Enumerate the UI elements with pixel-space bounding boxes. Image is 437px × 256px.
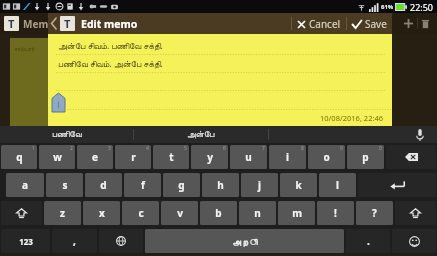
button[interactable]: c [122, 201, 159, 225]
staticText: k [295, 178, 302, 192]
staticText: t [169, 150, 174, 164]
staticText: 1 [32, 145, 35, 152]
button[interactable]: b [200, 201, 237, 225]
button[interactable]: , [52, 229, 97, 253]
staticText: T [8, 16, 15, 31]
staticText: 2 [70, 145, 73, 152]
button[interactable]: t [153, 145, 189, 169]
staticText: 123 [19, 236, 33, 247]
staticText: அன்பே [187, 130, 215, 139]
button[interactable]: பணிவே [0, 126, 133, 143]
button[interactable]: enter [358, 173, 436, 197]
staticText: பணிவே சிவம். அன்பே சக்தி. [58, 58, 163, 70]
staticText: 0 [379, 145, 382, 152]
button[interactable]: ? [356, 201, 393, 225]
button[interactable]: w [39, 145, 75, 169]
staticText: r [131, 150, 136, 164]
staticText: . [367, 234, 370, 248]
button[interactable]: m [278, 201, 315, 225]
button[interactable]: s [46, 173, 83, 197]
button[interactable]: g [163, 173, 200, 197]
staticText: v [177, 206, 183, 220]
staticText: 3 [108, 145, 111, 152]
button[interactable]: 123 [1, 229, 50, 253]
button[interactable]: shift [395, 201, 436, 225]
staticText: Cancel [309, 17, 341, 31]
button[interactable]: emoji [392, 229, 436, 253]
button[interactable]: Save [347, 17, 392, 31]
button[interactable]: p [347, 145, 384, 169]
staticText: அ ற ி [232, 236, 258, 247]
staticText: பணிவே [52, 130, 82, 139]
staticText: l [336, 178, 339, 192]
staticText: , [73, 234, 76, 248]
button[interactable]: ! [317, 201, 354, 225]
button[interactable]: d [85, 173, 122, 197]
staticText: f [141, 178, 145, 192]
button[interactable]: r [115, 145, 151, 169]
staticText: m [292, 206, 302, 220]
button[interactable]: v [161, 201, 198, 225]
staticText: j [258, 178, 261, 192]
staticText: 4 [146, 145, 149, 152]
staticText: சாம்பார் [14, 46, 35, 52]
button[interactable]: அ ற ி [145, 229, 344, 253]
staticText: z [60, 206, 65, 220]
staticText: i [286, 150, 289, 164]
button[interactable]: Add [400, 15, 417, 32]
staticText: Edit memo [81, 17, 138, 31]
button[interactable]: அன்பே [134, 126, 268, 143]
staticText: 9 [340, 145, 343, 152]
staticText: y [207, 150, 213, 164]
staticText: g [178, 178, 185, 192]
staticText: அன்பே சிவம். பணிவே சக்தி. [58, 40, 163, 52]
button[interactable]: l [319, 173, 356, 197]
staticText: h [217, 178, 224, 192]
button[interactable]: Cancel [292, 17, 346, 31]
button[interactable]: globe [99, 229, 143, 253]
button[interactable]: f [124, 173, 161, 197]
staticText: Memo [23, 17, 55, 31]
staticText: 8 [301, 145, 304, 152]
staticText: 5 [184, 145, 187, 152]
button[interactable]: o [308, 145, 345, 169]
button[interactable]: அன்பே சிவம். பணிவே சக்தி. [48, 34, 392, 126]
staticText: 61% [381, 3, 394, 11]
staticText: T [64, 16, 71, 31]
button[interactable]: i [269, 145, 306, 169]
staticText: x [99, 206, 105, 220]
button[interactable]: z [44, 201, 81, 225]
button[interactable]: e [77, 145, 113, 169]
button[interactable]: a [6, 173, 44, 197]
staticText: q [16, 150, 23, 164]
button[interactable]: shift [1, 201, 42, 225]
button[interactable]: y [191, 145, 228, 169]
button[interactable]: Up [48, 18, 60, 29]
button[interactable]: n [239, 201, 276, 225]
staticText: c [138, 206, 144, 220]
button[interactable]: . [346, 229, 390, 253]
button[interactable]: u [230, 145, 267, 169]
staticText: ? [372, 206, 377, 220]
staticText: 10/08/2016, 22:46 [320, 113, 384, 123]
button[interactable]: bksp [386, 145, 436, 169]
staticText: 6 [223, 145, 226, 152]
staticText: o [323, 150, 330, 164]
staticText: Save [365, 17, 387, 31]
staticText: a [22, 178, 28, 192]
staticText: p [362, 150, 369, 164]
staticText: 22:50 [410, 1, 434, 13]
staticText: w [53, 150, 62, 164]
button[interactable]: Delete [418, 15, 433, 32]
button[interactable]: Voice input [403, 126, 437, 143]
button[interactable]: k [280, 173, 317, 197]
button[interactable]: x [83, 201, 120, 225]
staticText: u [245, 150, 252, 164]
staticText: ! [334, 206, 337, 220]
staticText: b [215, 206, 222, 220]
button[interactable]: j [241, 173, 278, 197]
button[interactable]: h [202, 173, 239, 197]
staticText: d [100, 178, 107, 192]
staticText: s [62, 178, 68, 192]
button[interactable]: q [1, 145, 37, 169]
